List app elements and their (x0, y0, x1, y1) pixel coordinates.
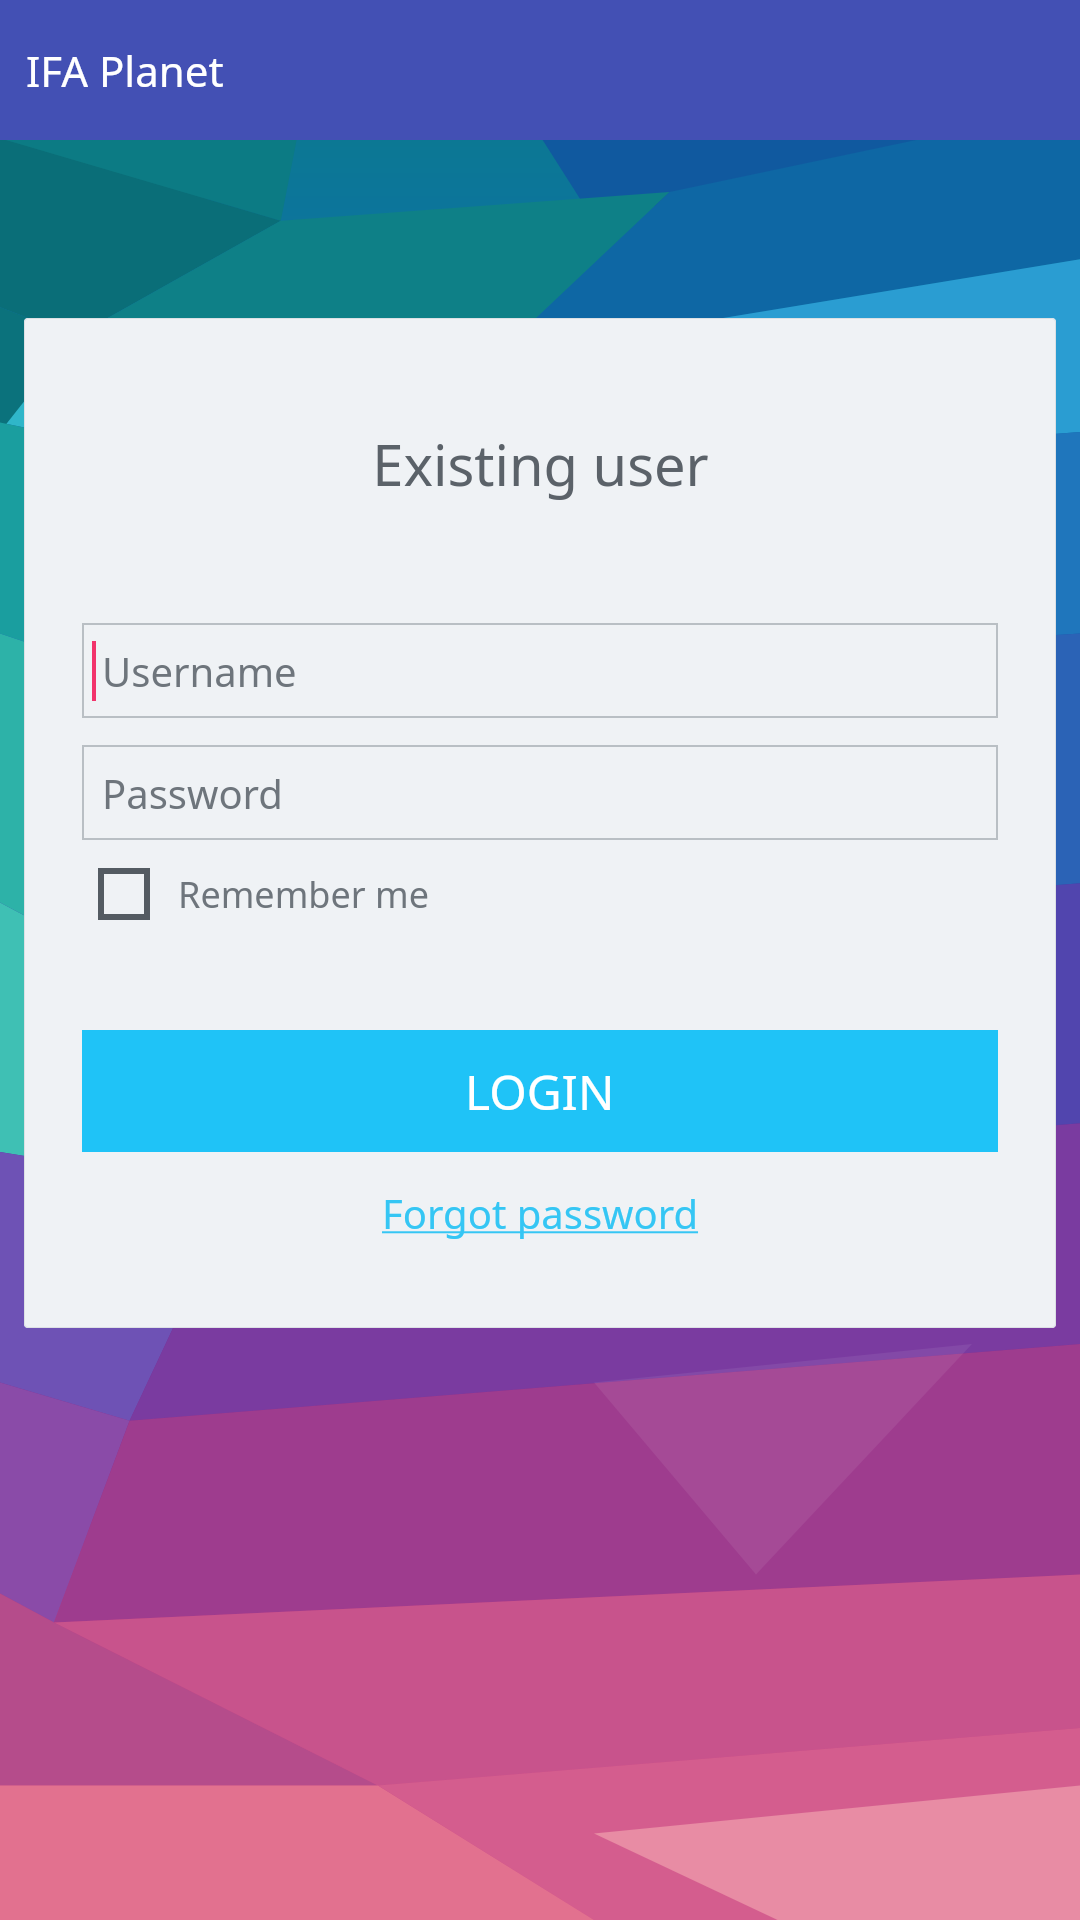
staticText: Username (102, 644, 297, 698)
button[interactable]: Forgot password (374, 1180, 707, 1246)
staticText: Remember me (178, 870, 429, 919)
button[interactable]: LOGIN (82, 1030, 998, 1152)
staticText: IFA Planet (26, 42, 224, 99)
staticText: Forgot password (382, 1186, 699, 1240)
staticText: LOGIN (465, 1059, 615, 1124)
staticText: Password (102, 766, 283, 820)
button[interactable]: Remember me (82, 868, 998, 920)
button[interactable]: Username (82, 623, 998, 718)
staticText: Existing user (372, 426, 709, 502)
button[interactable]: Password (82, 745, 998, 840)
